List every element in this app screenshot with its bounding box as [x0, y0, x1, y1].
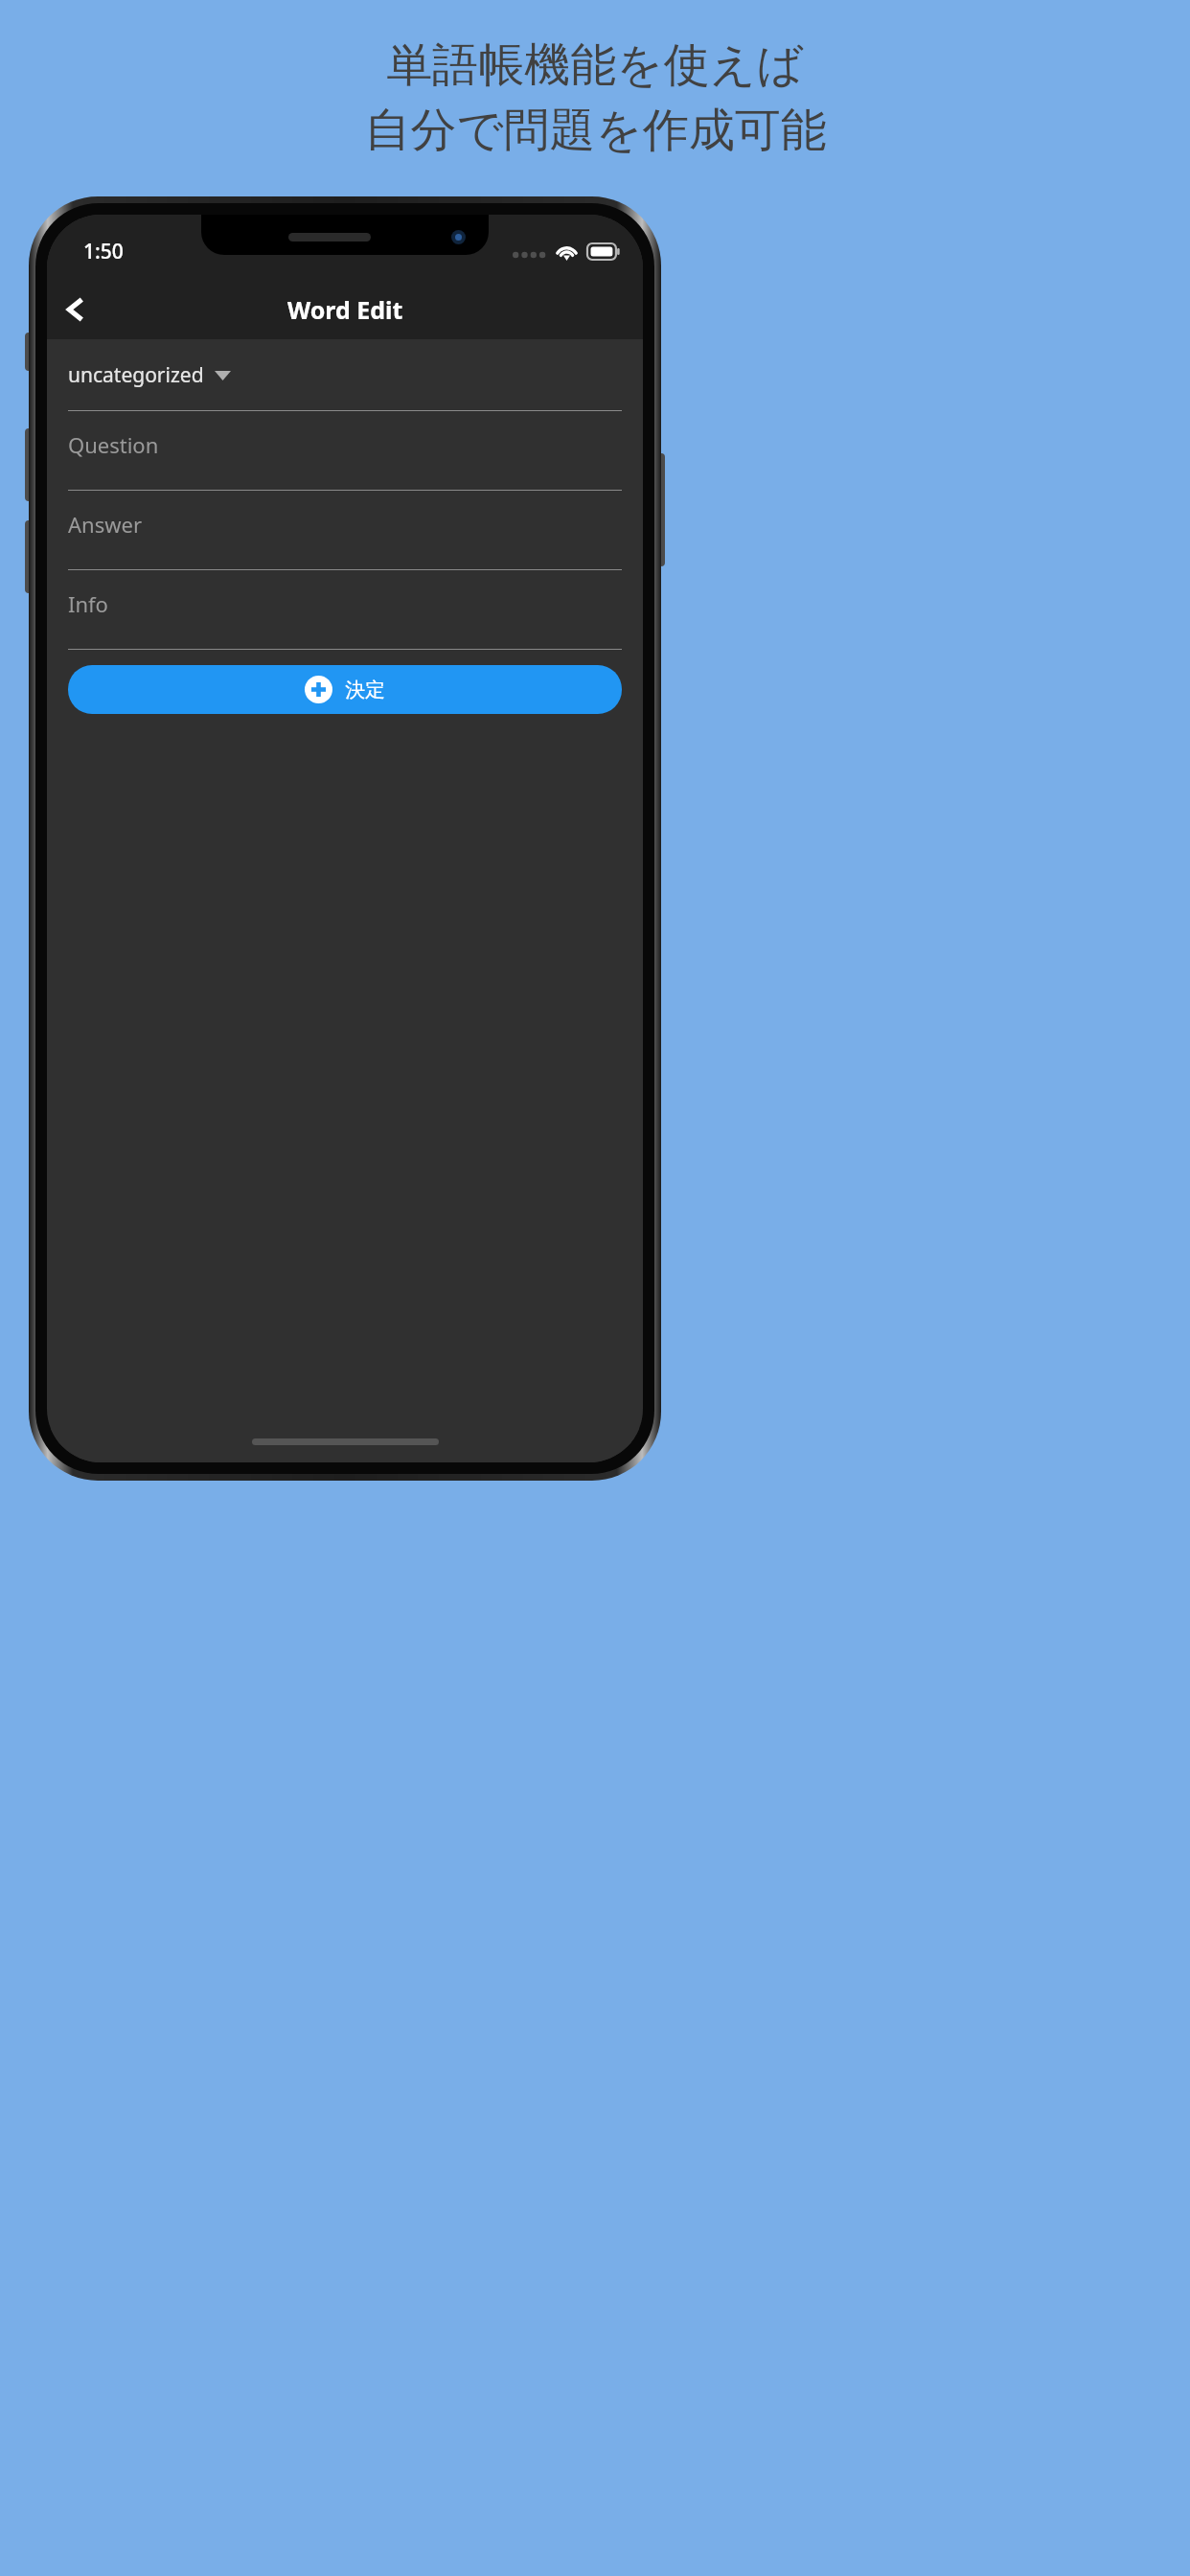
staticText: 自分で問題を作成可能: [364, 102, 827, 159]
button[interactable]: Info: [68, 570, 622, 649]
button[interactable]: uncategorized: [68, 339, 622, 410]
staticText: Question: [68, 430, 159, 459]
staticText: Answer: [68, 510, 142, 539]
button[interactable]: Answer: [68, 491, 622, 569]
staticText: Word Edit: [287, 293, 403, 326]
staticText: 1:50: [83, 238, 124, 265]
staticText: Info: [68, 589, 108, 618]
button[interactable]: Question: [68, 411, 622, 490]
button[interactable]: Back: [47, 282, 103, 337]
staticText: uncategorized: [68, 361, 204, 389]
staticText: 単語帳機能を使えば: [386, 36, 804, 94]
staticText: 決定: [345, 678, 385, 702]
button[interactable]: 決定: [68, 665, 622, 714]
